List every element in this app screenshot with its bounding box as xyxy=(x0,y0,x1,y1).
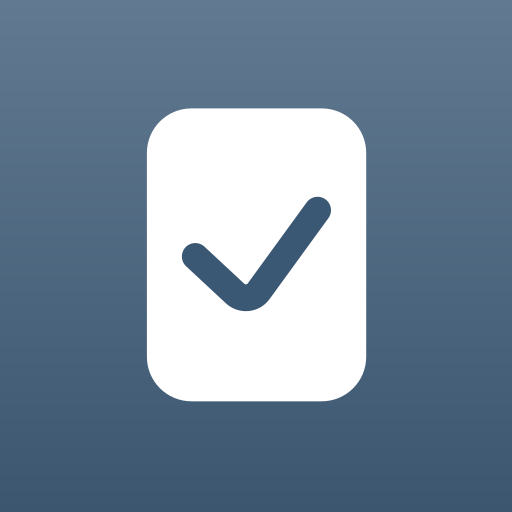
button[interactable]: Open Checklist xyxy=(0,0,512,512)
